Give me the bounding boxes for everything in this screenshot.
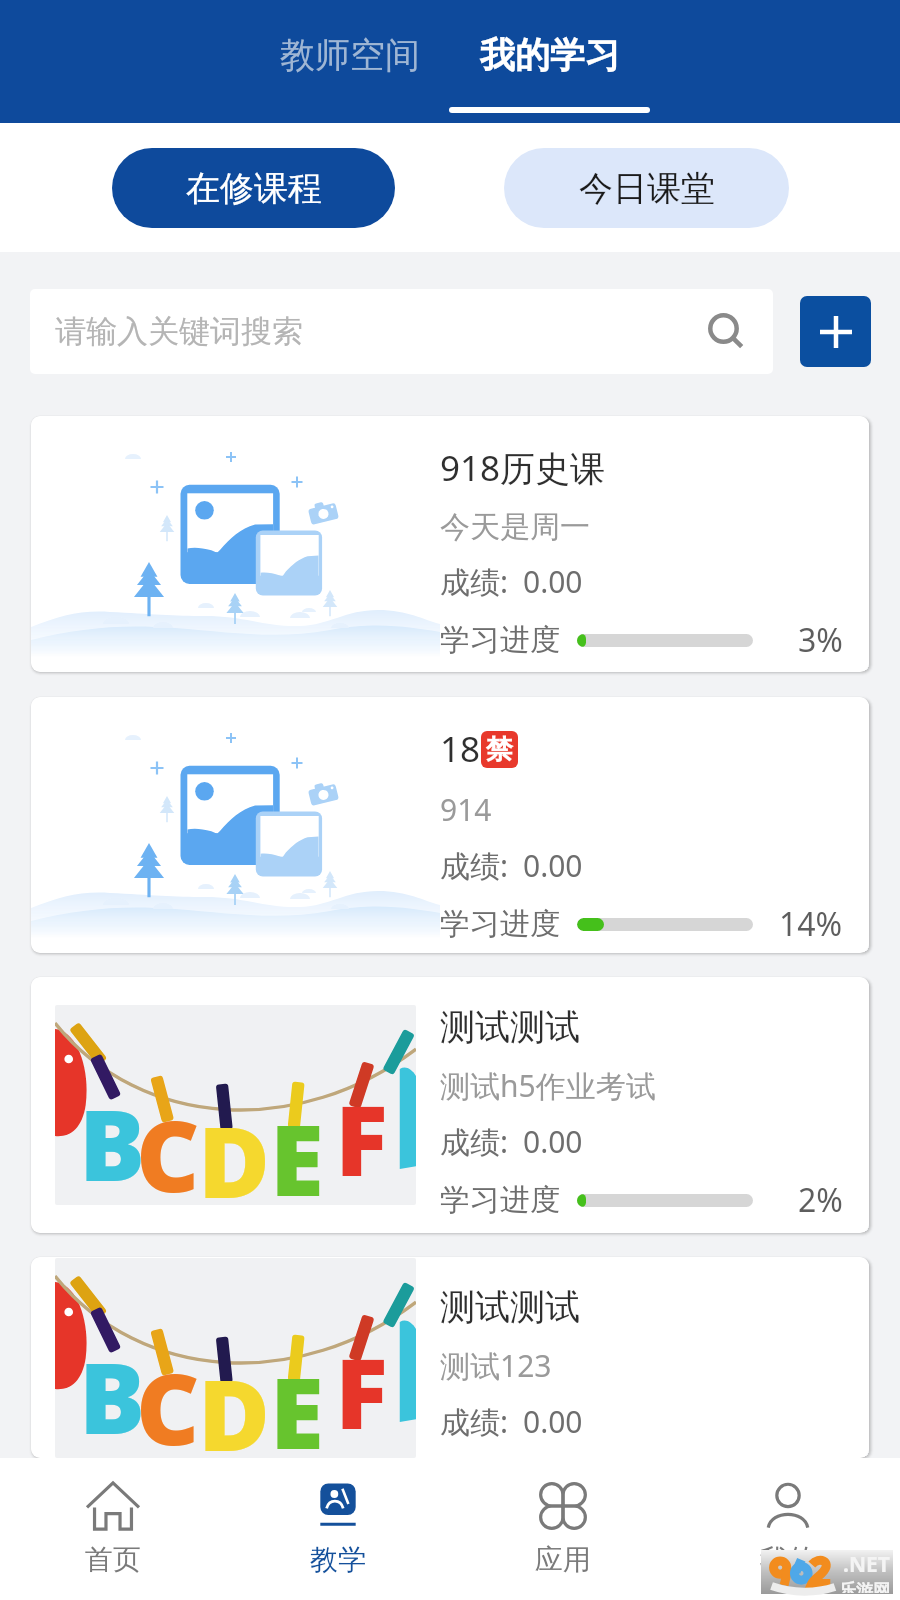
staticText: C	[136, 1340, 200, 1458]
staticText: B	[79, 1076, 146, 1205]
button[interactable]: 教学	[225, 1458, 450, 1600]
button[interactable]: Add course	[800, 296, 871, 367]
button[interactable]: 请输入关键词搜索	[30, 289, 773, 374]
staticText: 我的	[760, 1542, 816, 1577]
button[interactable]: 在修课程	[112, 148, 395, 228]
staticText: 请输入关键词搜索	[55, 312, 303, 351]
button[interactable]: 教师空间	[268, 26, 432, 84]
staticText: E	[270, 1091, 324, 1205]
staticText: F	[335, 1324, 388, 1457]
staticText: D	[198, 1346, 270, 1458]
staticText: 成绩:	[440, 845, 509, 886]
staticText: 今日课堂	[579, 167, 715, 210]
staticText: 成绩:	[440, 561, 509, 602]
staticText: 测试123	[440, 1345, 552, 1386]
staticText: .NET	[843, 1550, 890, 1579]
staticText: 测试h5作业考试	[440, 1065, 656, 1106]
button[interactable]: 我的	[675, 1458, 900, 1600]
staticText: 教学	[310, 1542, 366, 1577]
staticText: 成绩:	[440, 1121, 509, 1162]
staticText: 成绩:	[440, 1401, 509, 1442]
staticText: 教师空间	[280, 33, 420, 77]
staticText: 应用	[535, 1542, 591, 1577]
button[interactable]: 首页	[0, 1458, 225, 1600]
staticText: 18	[440, 725, 481, 773]
staticText: 测试测试	[440, 1005, 580, 1049]
staticText: 禁	[486, 733, 513, 767]
staticText: 914	[440, 789, 492, 830]
staticText: 乐游网	[839, 1580, 890, 1593]
staticText: E	[270, 1344, 324, 1458]
staticText: C	[136, 1087, 200, 1205]
button[interactable]: B	[31, 977, 869, 1233]
staticText: 14%	[779, 902, 843, 946]
staticText: 0.00	[523, 561, 583, 602]
staticText: 0.00	[523, 1121, 583, 1162]
staticText: 3%	[798, 618, 843, 662]
staticText: 学习进度	[440, 621, 560, 659]
staticText: 今天是周一	[440, 508, 590, 546]
button[interactable]: 今日课堂	[504, 148, 789, 228]
staticText: 我的学习	[480, 33, 620, 77]
staticText: 918历史课	[440, 444, 606, 492]
button[interactable]: B	[31, 1257, 869, 1458]
staticText: 首页	[85, 1542, 141, 1577]
staticText: 0.00	[523, 845, 583, 886]
staticText: 测试测试	[440, 1285, 580, 1329]
staticText: D	[198, 1093, 270, 1205]
staticText: 0.00	[523, 1401, 583, 1442]
button[interactable]: 18	[31, 697, 869, 953]
staticText: F	[335, 1071, 388, 1204]
staticText: 学习进度	[440, 1181, 560, 1219]
button[interactable]: 应用	[450, 1458, 675, 1600]
staticText: 学习进度	[440, 905, 560, 943]
staticText: B	[79, 1329, 146, 1458]
staticText: 在修课程	[186, 167, 322, 210]
staticText: 2%	[798, 1178, 843, 1222]
button[interactable]: 918历史课	[31, 416, 869, 672]
button[interactable]: 我的学习	[468, 26, 632, 84]
